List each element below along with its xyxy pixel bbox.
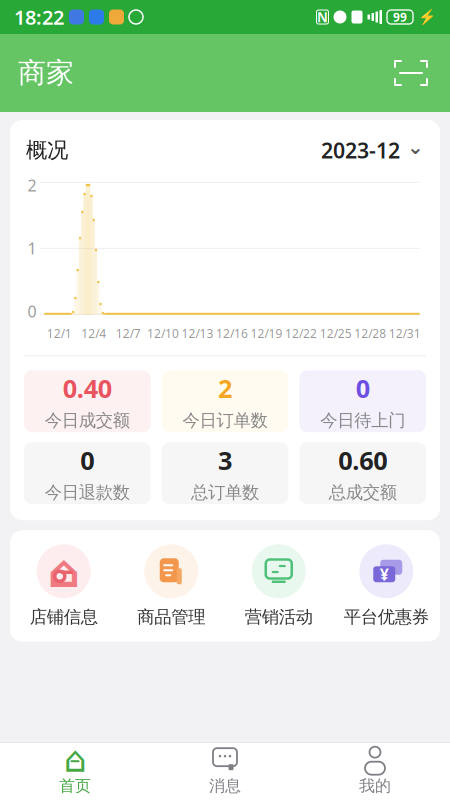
- staticText: 概况: [26, 137, 68, 163]
- button[interactable]: 扫一扫: [390, 52, 432, 94]
- button[interactable]: 我的: [300, 744, 450, 798]
- staticText: ⌂: [48, 545, 80, 597]
- staticText: 12/10: [147, 325, 179, 341]
- staticText: 今日待上门: [320, 410, 405, 431]
- button[interactable]: ¥: [332, 544, 440, 628]
- staticText: 商品管理: [137, 606, 205, 628]
- button[interactable]: 0.40: [24, 370, 151, 432]
- staticText: 0.40: [63, 371, 112, 405]
- staticText: 今日退款数: [45, 482, 130, 503]
- staticText: 12/16: [216, 325, 248, 341]
- staticText: 0: [80, 443, 94, 477]
- staticText: 18:22: [14, 4, 64, 30]
- staticText: 12/22: [285, 325, 317, 341]
- button[interactable]: 0.60: [299, 442, 426, 504]
- button[interactable]: 商品管理: [117, 544, 225, 628]
- staticText: 12/31: [389, 325, 421, 341]
- staticText: 12/13: [181, 325, 213, 341]
- button[interactable]: 2: [162, 370, 288, 432]
- staticText: 3: [218, 443, 232, 477]
- staticText: 商家: [18, 56, 74, 90]
- staticText: ⚡: [418, 9, 436, 25]
- staticText: ⌄: [407, 136, 424, 158]
- staticText: 12/25: [320, 325, 352, 341]
- staticText: 12/1: [47, 325, 72, 341]
- button[interactable]: 3: [162, 442, 288, 504]
- staticText: ⌂: [63, 739, 86, 780]
- button[interactable]: 2023-12: [321, 136, 424, 164]
- button[interactable]: ⌂: [10, 544, 117, 628]
- staticText: 12/28: [354, 325, 386, 341]
- staticText: 0.60: [338, 443, 387, 477]
- staticText: N: [317, 8, 328, 26]
- staticText: 12/7: [116, 325, 141, 341]
- staticText: ¥: [380, 564, 389, 585]
- staticText: 店铺信息: [30, 606, 98, 628]
- staticText: 99: [393, 9, 407, 25]
- button[interactable]: 0: [24, 442, 151, 504]
- staticText: 0: [356, 371, 370, 405]
- staticText: 2023-12: [321, 136, 400, 164]
- button[interactable]: 营销活动: [225, 544, 332, 628]
- staticText: 营销活动: [245, 606, 313, 628]
- staticText: 0: [27, 301, 36, 322]
- staticText: 2: [27, 175, 36, 196]
- button[interactable]: ⌂: [0, 744, 150, 798]
- staticText: 总成交额: [329, 482, 397, 503]
- button[interactable]: 0: [299, 370, 426, 432]
- staticText: 消息: [209, 776, 241, 796]
- staticText: 12/4: [81, 325, 106, 341]
- staticText: 1: [27, 238, 36, 259]
- staticText: 2: [218, 371, 232, 405]
- button[interactable]: 消息: [150, 744, 300, 798]
- staticText: 12/19: [250, 325, 282, 341]
- staticText: 平台优惠券: [344, 606, 429, 628]
- staticText: 今日订单数: [182, 410, 267, 431]
- staticText: 首页: [59, 776, 91, 796]
- staticText: 总订单数: [191, 482, 259, 503]
- staticText: 今日成交额: [45, 410, 130, 431]
- staticText: 我的: [359, 776, 391, 796]
